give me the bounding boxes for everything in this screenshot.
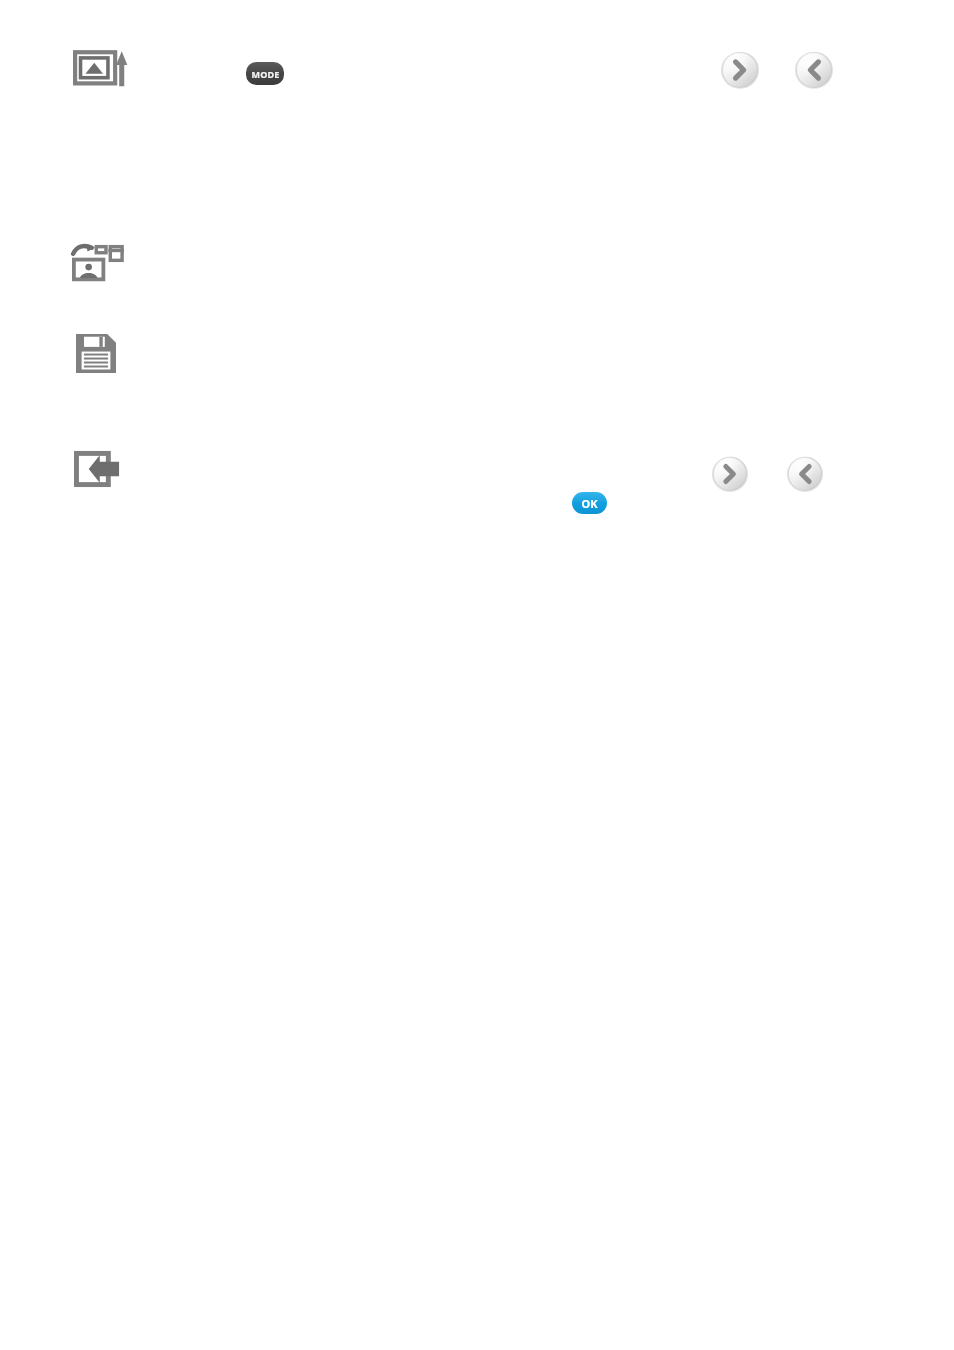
staticText: OK (581, 496, 598, 511)
button[interactable]: OK (572, 492, 607, 514)
button[interactable]: Transfer image (72, 244, 124, 282)
button[interactable]: MODE (246, 62, 284, 85)
staticText: MODE (251, 68, 280, 80)
button[interactable]: Previous (712, 456, 748, 492)
button[interactable]: Next (787, 456, 823, 492)
button[interactable]: Back (74, 450, 120, 488)
button[interactable]: Next (795, 51, 833, 89)
button[interactable]: Display image (73, 49, 129, 87)
button[interactable]: Previous (721, 51, 759, 89)
button[interactable]: Save (76, 334, 116, 373)
